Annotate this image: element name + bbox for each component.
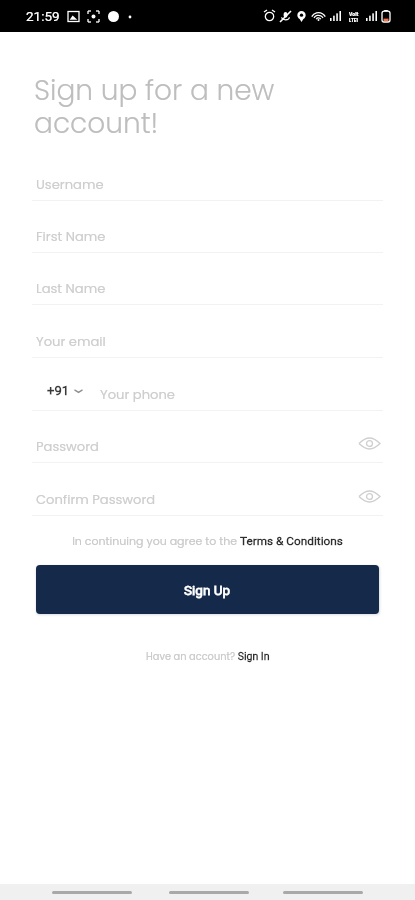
button[interactable]: Have an account? Sign In <box>146 650 270 664</box>
button[interactable]: Recents <box>283 891 363 894</box>
staticText: Confirm Password <box>36 490 156 508</box>
staticText: +91 <box>47 383 69 398</box>
button[interactable]: Your email <box>32 317 383 358</box>
staticText: Last Name <box>36 279 106 297</box>
button[interactable]: Last Name <box>32 264 383 305</box>
button[interactable]: Sign Up <box>36 565 379 614</box>
staticText: Sign Up <box>184 582 231 598</box>
button[interactable]: Show password <box>357 431 382 456</box>
staticText: 21:59 <box>26 8 60 24</box>
staticText: First Name <box>36 227 106 245</box>
button[interactable]: +91 <box>32 383 85 398</box>
staticText: Username <box>36 175 104 193</box>
staticText: In continuing you agree to the Terms & C… <box>32 533 383 548</box>
button[interactable]: Back <box>52 891 132 894</box>
staticText: Sign up for a new account! <box>34 71 275 143</box>
button[interactable]: First Name <box>32 212 383 253</box>
button[interactable]: Password <box>32 422 383 463</box>
staticText: Password <box>36 437 99 455</box>
button[interactable]: Home <box>169 891 249 894</box>
button[interactable]: Username <box>32 160 383 201</box>
button[interactable]: Show password <box>357 484 382 509</box>
staticText: Volt <box>349 11 359 17</box>
staticText: Your phone <box>100 385 175 403</box>
staticText: Your email <box>36 332 106 350</box>
button[interactable]: Confirm Password <box>32 475 383 516</box>
staticText: LTE1 <box>349 17 358 22</box>
